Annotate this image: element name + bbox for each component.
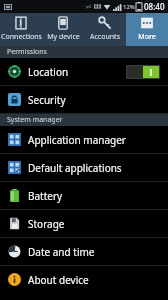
staticText: Application manager [28, 133, 126, 147]
button[interactable]: Location [0, 58, 168, 85]
other: Accounts [98, 16, 112, 30]
staticText: My device [47, 32, 80, 42]
button[interactable]: More [126, 13, 168, 46]
staticText: Location [28, 65, 69, 79]
button[interactable]: Security [0, 86, 168, 113]
staticText: Security [28, 93, 66, 107]
button[interactable]: Connections [0, 13, 42, 46]
button[interactable]: Storage [0, 210, 168, 237]
staticText: Accounts [90, 32, 120, 42]
staticText: Default applications [28, 161, 122, 175]
staticText: About device [28, 273, 89, 287]
button[interactable]: Location on [126, 65, 160, 79]
staticText: Battery [28, 189, 63, 203]
staticText: 08:40 [144, 1, 165, 12]
staticText: Storage [28, 217, 65, 231]
staticText: Date and time [28, 245, 95, 259]
staticText: 12% [123, 3, 135, 11]
button[interactable]: About device [0, 266, 168, 293]
button[interactable]: Application manager [0, 126, 168, 153]
button[interactable]: Default applications [0, 154, 168, 181]
button[interactable]: Battery [0, 182, 168, 209]
button[interactable]: Accounts [84, 13, 126, 46]
other: More [140, 16, 154, 30]
staticText: More [138, 32, 156, 42]
staticText: Permissions [7, 47, 47, 57]
other: My device [56, 16, 70, 30]
button[interactable]: Date and time [0, 238, 168, 265]
button[interactable]: My device [42, 13, 84, 46]
staticText: System manager [7, 115, 63, 125]
other: Connections [14, 16, 28, 30]
staticText: Connections [1, 32, 42, 42]
